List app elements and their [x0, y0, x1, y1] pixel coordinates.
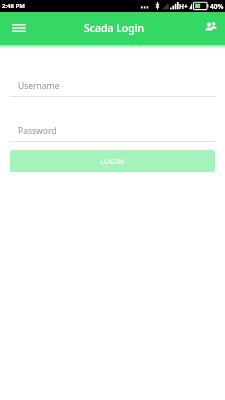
- button[interactable]: Open navigation drawer: [7, 16, 31, 40]
- staticText: 2:48 PM: [2, 2, 25, 10]
- button[interactable]: Username: [10, 74, 216, 97]
- staticText: Username: [18, 80, 60, 92]
- staticText: LOGIN: [100, 156, 124, 166]
- staticText: Scada Login: [84, 21, 145, 35]
- staticText: H+: [179, 2, 188, 11]
- button[interactable]: Password: [10, 119, 216, 142]
- staticText: Password: [18, 125, 57, 137]
- staticText: 40%: [210, 2, 224, 11]
- button[interactable]: LOGIN: [10, 150, 215, 172]
- button[interactable]: Users: [200, 15, 222, 37]
